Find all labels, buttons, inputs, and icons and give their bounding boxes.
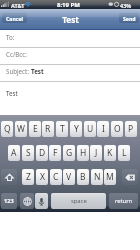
- button[interactable]: M: [104, 169, 116, 185]
- button[interactable]: O: [111, 121, 123, 137]
- staticText: G: [66, 147, 73, 159]
- button[interactable]: A: [8, 145, 20, 161]
- button[interactable]: Shift: [1, 169, 17, 185]
- staticText: return: [115, 197, 133, 205]
- button[interactable]: D: [36, 145, 48, 161]
- staticText: J: [95, 147, 98, 159]
- staticText: A: [11, 147, 17, 159]
- staticText: W: [17, 123, 25, 135]
- button[interactable]: L: [118, 145, 130, 161]
- staticText: Z: [26, 171, 31, 183]
- staticText: O: [114, 123, 121, 135]
- button[interactable]: H: [77, 145, 89, 161]
- staticText: 123: [4, 197, 14, 205]
- button[interactable]: T: [56, 121, 68, 137]
- button[interactable]: Send: [119, 13, 139, 23]
- button[interactable]: Cc/Bcc:: [0, 47, 140, 64]
- button[interactable]: P: [125, 121, 137, 137]
- button[interactable]: Cancel: [2, 13, 27, 23]
- button[interactable]: Return: [109, 193, 138, 209]
- button[interactable]: Emoji keyboard: [20, 193, 34, 209]
- staticText: B: [80, 171, 86, 183]
- button[interactable]: X: [36, 169, 48, 185]
- button[interactable]: Numbers: [1, 193, 17, 209]
- staticText: 43%: [120, 2, 132, 9]
- button[interactable]: Backspace: [122, 169, 138, 185]
- staticText: Test: [6, 89, 18, 97]
- staticText: N: [94, 171, 101, 183]
- staticText: Test: [31, 67, 44, 75]
- staticText: Y: [74, 123, 79, 135]
- button[interactable]: Z: [22, 169, 34, 185]
- staticText: Subject:: [6, 67, 29, 75]
- staticText: Send: [123, 15, 136, 22]
- staticText: I: [102, 123, 105, 135]
- staticText: V: [66, 171, 72, 183]
- staticText: P: [128, 123, 134, 135]
- button[interactable]: G: [63, 145, 75, 161]
- button[interactable]: Q: [1, 121, 13, 137]
- staticText: space: [71, 197, 87, 205]
- button[interactable]: Y: [70, 121, 82, 137]
- staticText: Q: [4, 123, 11, 135]
- staticText: T: [60, 123, 65, 135]
- button[interactable]: W: [15, 121, 27, 137]
- staticText: M: [106, 171, 114, 183]
- staticText: Test: [62, 14, 79, 25]
- staticText: D: [39, 147, 46, 159]
- button[interactable]: Dictation: [35, 193, 48, 209]
- staticText: K: [107, 147, 113, 159]
- button[interactable]: V: [63, 169, 75, 185]
- button[interactable]: K: [104, 145, 116, 161]
- staticText: F: [53, 147, 58, 159]
- button[interactable]: C: [50, 169, 62, 185]
- button[interactable]: I: [97, 121, 109, 137]
- button[interactable]: Space: [51, 193, 106, 209]
- staticText: S: [26, 147, 31, 159]
- button[interactable]: B: [77, 169, 89, 185]
- button[interactable]: S: [22, 145, 34, 161]
- staticText: C: [53, 171, 59, 183]
- button[interactable]: F: [49, 145, 61, 161]
- staticText: X: [40, 171, 45, 183]
- staticText: E: [33, 123, 38, 135]
- staticText: Cancel: [6, 15, 24, 22]
- button[interactable]: To:: [0, 30, 140, 47]
- staticText: 8:19 PM: [57, 1, 80, 9]
- staticText: AT&T: [11, 2, 25, 9]
- button[interactable]: R: [42, 121, 54, 137]
- button[interactable]: E: [29, 121, 41, 137]
- button[interactable]: J: [90, 145, 102, 161]
- staticText: Cc/Bcc:: [6, 50, 27, 58]
- button[interactable]: U: [84, 121, 96, 137]
- button[interactable]: Subject:: [0, 64, 140, 81]
- staticText: To:: [6, 33, 15, 41]
- button[interactable]: N: [91, 169, 103, 185]
- staticText: L: [122, 147, 127, 159]
- staticText: H: [80, 147, 87, 159]
- staticText: R: [45, 123, 51, 135]
- staticText: U: [87, 123, 94, 135]
